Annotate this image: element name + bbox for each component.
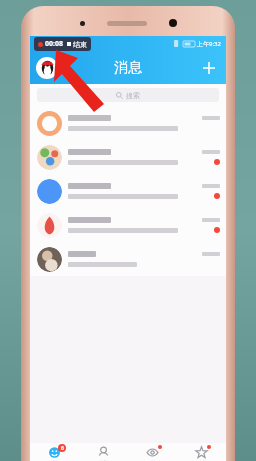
staticText: 消息 bbox=[51, 460, 59, 461]
button[interactable]: 搜索 bbox=[37, 88, 219, 102]
button[interactable] bbox=[30, 106, 226, 140]
staticText: 6 bbox=[61, 445, 64, 452]
button[interactable]: 6 bbox=[30, 443, 79, 461]
button[interactable]: Add bbox=[198, 57, 220, 79]
staticText: 看点 bbox=[149, 460, 157, 461]
button[interactable] bbox=[30, 140, 226, 174]
staticText: 动态 bbox=[198, 460, 206, 461]
button[interactable]: 00:08 bbox=[38, 39, 87, 49]
button[interactable]: Profile bbox=[36, 57, 58, 79]
staticText: 中国联通 bbox=[35, 41, 51, 46]
button[interactable]: 联系人 bbox=[79, 443, 128, 461]
staticText: 联系人 bbox=[98, 460, 110, 461]
staticText: 00:08 bbox=[45, 39, 63, 49]
button[interactable]: 看点 bbox=[128, 443, 177, 461]
staticText: 结束 bbox=[73, 40, 87, 49]
button[interactable] bbox=[30, 208, 226, 242]
button[interactable] bbox=[30, 174, 226, 208]
staticText: 上午9:32 bbox=[197, 40, 221, 48]
button[interactable]: 动态 bbox=[177, 443, 226, 461]
staticText: 搜索 bbox=[126, 91, 140, 100]
button[interactable] bbox=[30, 242, 226, 276]
staticText: 消息 bbox=[114, 59, 142, 77]
